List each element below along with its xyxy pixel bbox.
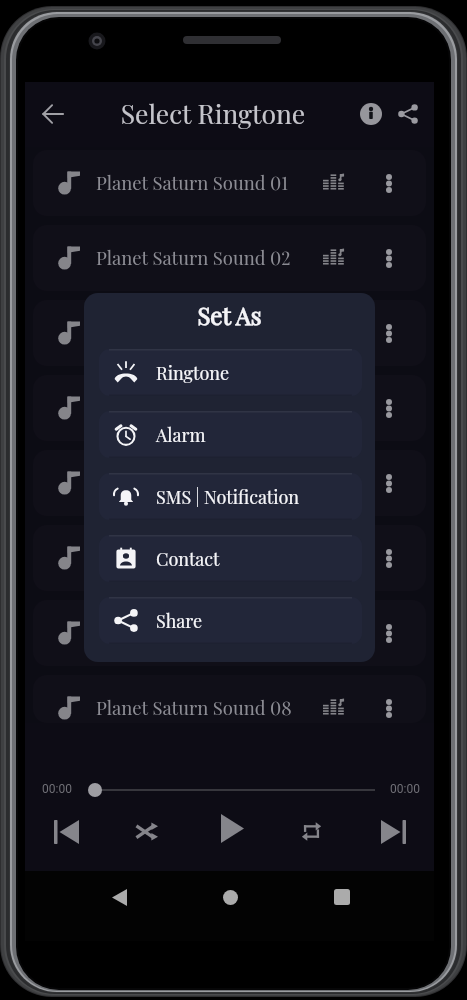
button[interactable]: Ringtone — [99, 349, 362, 396]
button[interactable]: More options — [374, 543, 404, 573]
staticText: Set As — [84, 299, 375, 331]
button[interactable]: More options — [374, 468, 404, 498]
staticText: Share — [156, 609, 203, 633]
staticText: Planet Saturn Sound 03 — [96, 320, 292, 345]
staticText: 00:00 — [390, 782, 420, 796]
button[interactable]: Planet Saturn Sound 04 — [33, 375, 426, 441]
button[interactable]: More options — [374, 693, 404, 723]
button[interactable]: Planet Saturn Sound 08 — [33, 675, 426, 723]
button[interactable]: SMS | Notification — [99, 473, 362, 520]
button[interactable]: Back — [99, 877, 139, 917]
staticText: Planet Saturn Sound 07 — [96, 620, 291, 645]
button[interactable]: Contact — [99, 535, 362, 582]
button[interactable]: Planet Saturn Sound 07 — [33, 600, 426, 666]
button[interactable]: More options — [374, 318, 404, 348]
button[interactable]: Previous — [44, 810, 88, 854]
button[interactable]: Shuffle — [125, 809, 169, 853]
button[interactable]: Planet Saturn Sound 02 — [33, 225, 426, 291]
button[interactable]: More options — [374, 393, 404, 423]
button[interactable]: Repeat — [289, 809, 333, 853]
button[interactable]: More options — [374, 243, 404, 273]
button[interactable]: Planet Saturn Sound 01 — [33, 150, 426, 216]
button[interactable]: More options — [374, 168, 404, 198]
staticText: Alarm — [156, 423, 206, 447]
staticText: 00:00 — [42, 782, 72, 796]
staticText: Planet Saturn Sound 01 — [96, 170, 288, 195]
staticText: Ringtone — [156, 361, 230, 385]
button[interactable]: Alarm — [99, 411, 362, 458]
button[interactable]: Share — [99, 597, 362, 644]
button[interactable]: Share — [390, 96, 426, 132]
button[interactable]: Info — [353, 96, 389, 132]
button[interactable]: Planet Saturn Sound 05 — [33, 450, 426, 516]
button[interactable]: Planet Saturn Sound 03 — [33, 300, 426, 366]
button[interactable]: Play — [210, 806, 254, 850]
staticText: Planet Saturn Sound 06 — [96, 545, 292, 570]
staticText: Select Ringtone — [83, 95, 343, 130]
button[interactable]: Next — [371, 810, 415, 854]
staticText: Planet Saturn Sound 04 — [96, 395, 292, 420]
staticText: Planet Saturn Sound 05 — [96, 470, 291, 495]
button[interactable]: Back — [35, 96, 71, 132]
button[interactable]: Recents — [322, 877, 362, 917]
staticText: Contact — [156, 547, 220, 571]
button[interactable]: More options — [374, 618, 404, 648]
staticText: Planet Saturn Sound 08 — [96, 695, 292, 720]
button[interactable]: Home — [210, 877, 250, 917]
staticText: Planet Saturn Sound 02 — [96, 245, 291, 270]
button[interactable]: Planet Saturn Sound 06 — [33, 525, 426, 591]
staticText: SMS | Notification — [156, 485, 300, 509]
